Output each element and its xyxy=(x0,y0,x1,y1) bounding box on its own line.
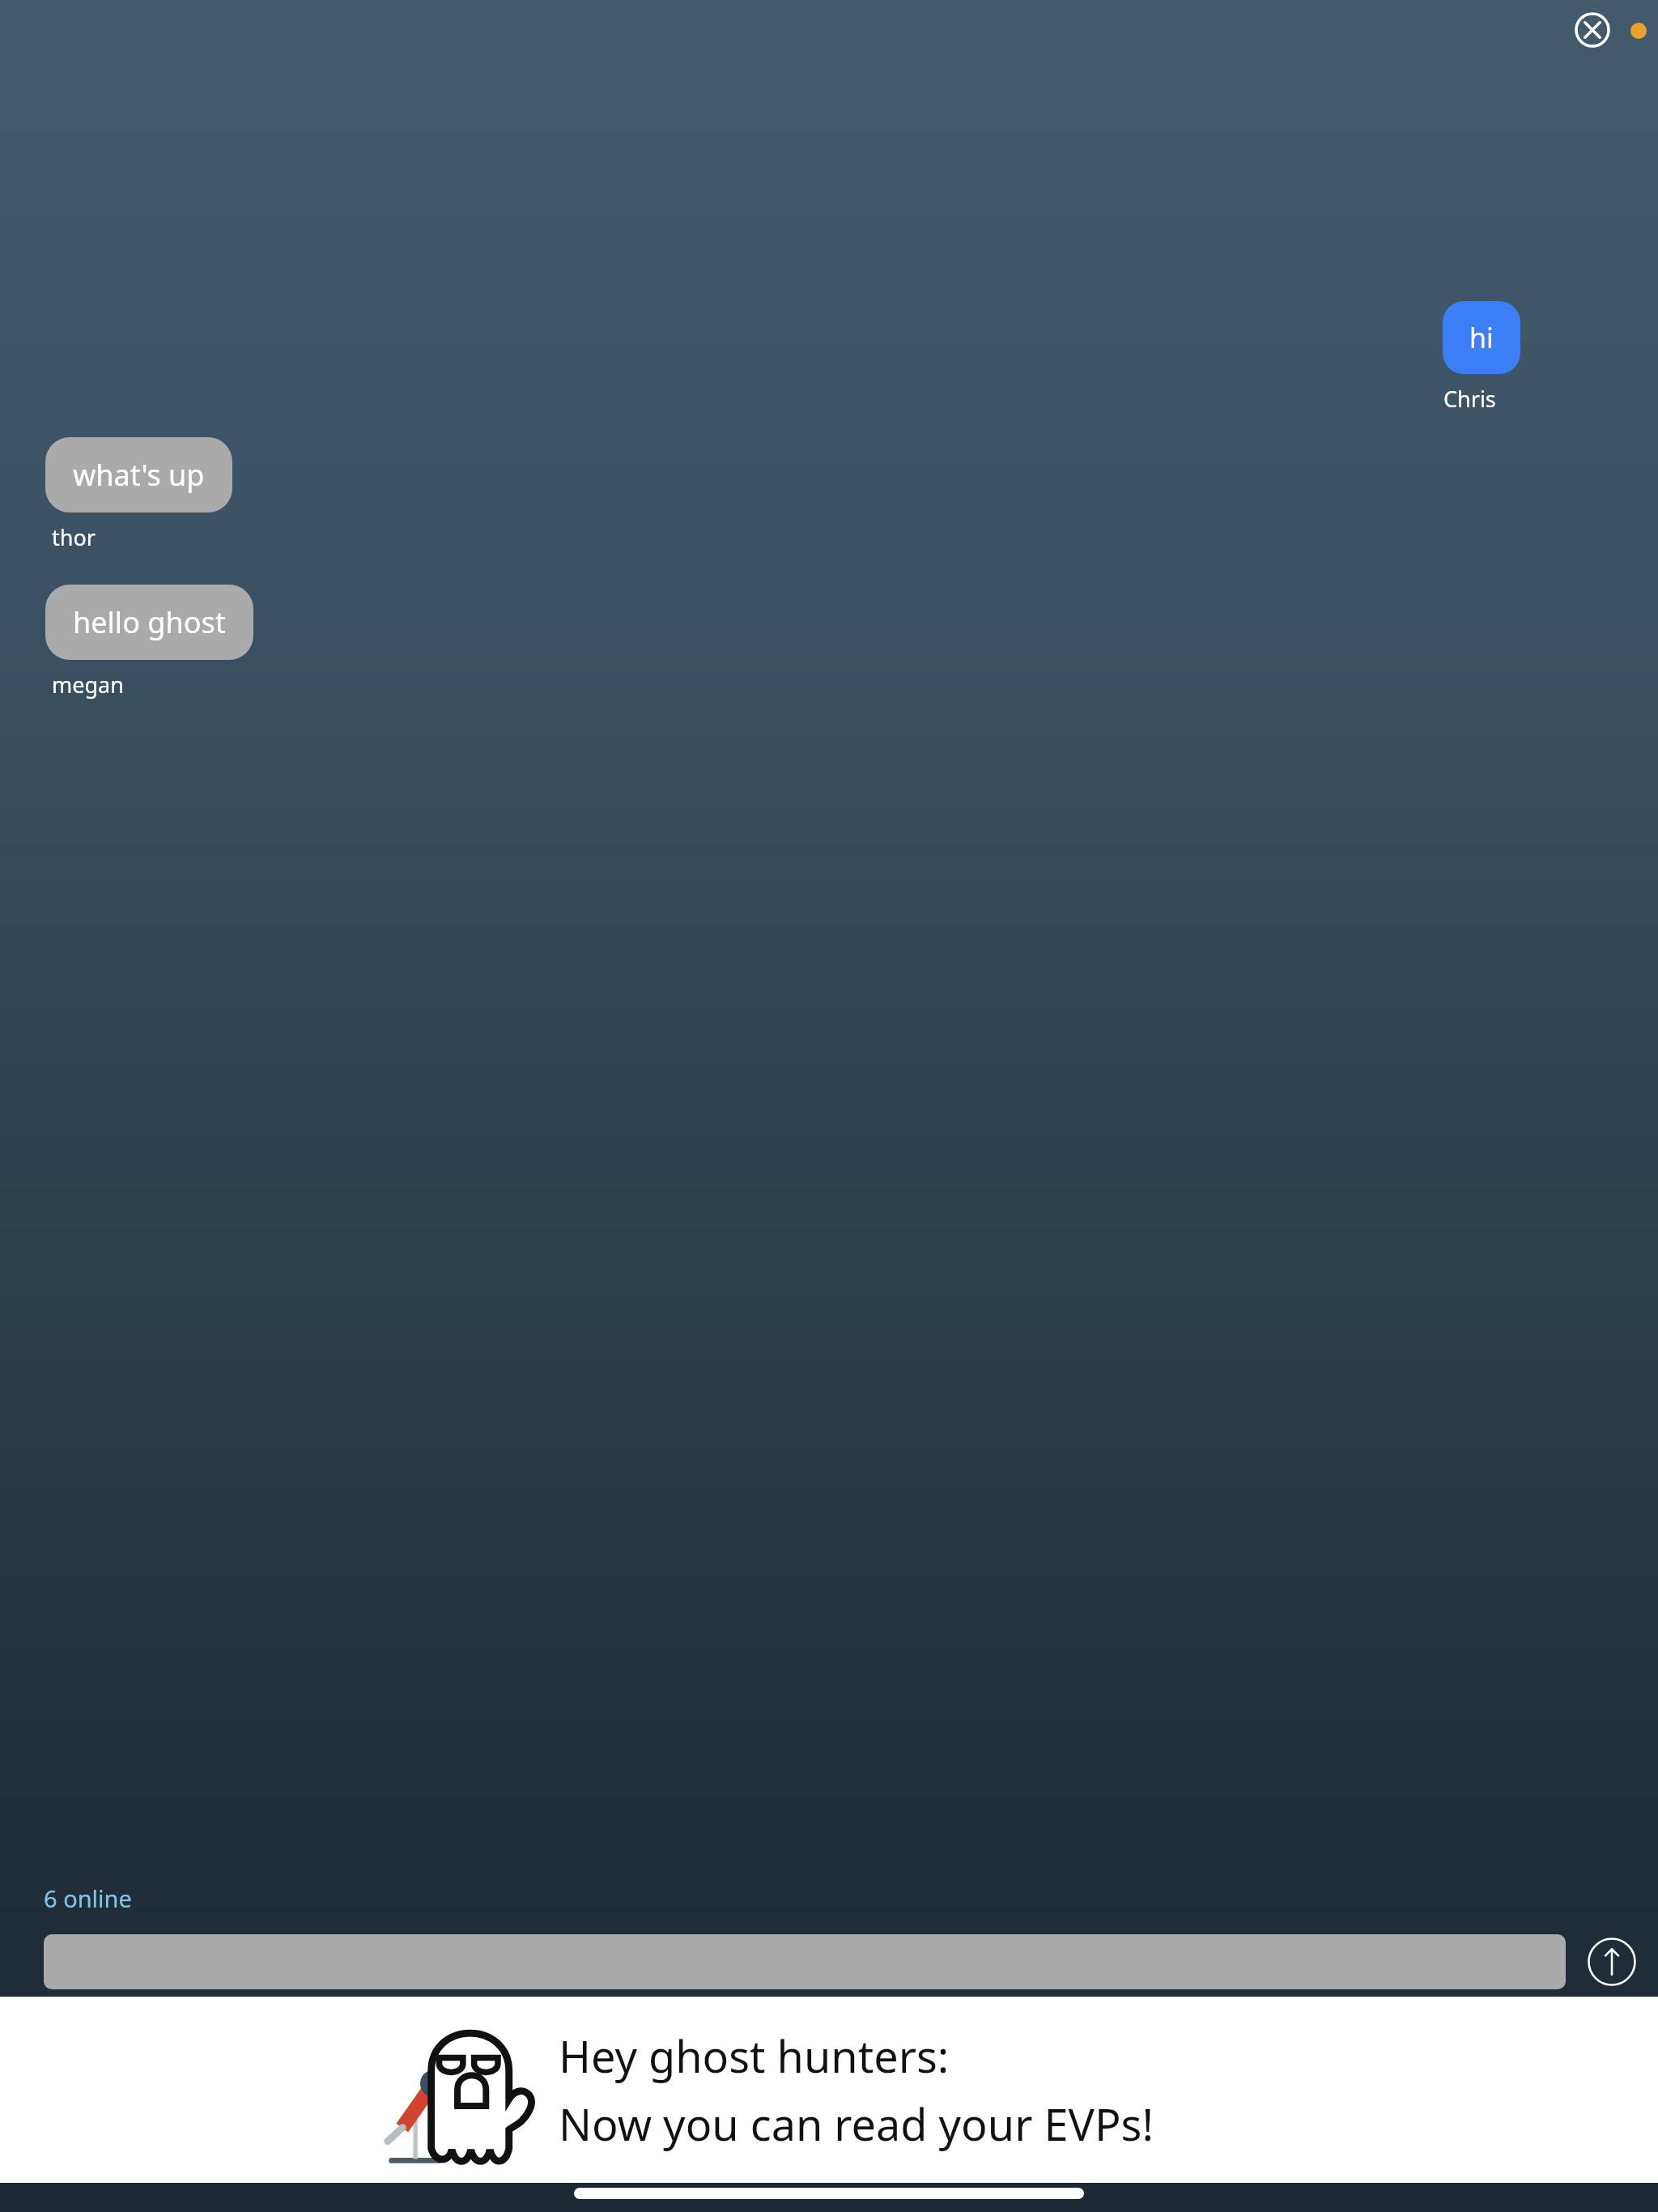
staticText: thor xyxy=(52,522,96,552)
staticText: hello ghost xyxy=(73,602,226,642)
staticText: 6 online xyxy=(44,1882,132,1914)
button[interactable]: hi xyxy=(1443,301,1520,374)
button[interactable] xyxy=(44,1934,1566,1989)
staticText: hi xyxy=(1469,319,1494,356)
staticText: Now you can read your EVPs! xyxy=(559,2094,1154,2154)
button[interactable]: hello ghost xyxy=(45,585,253,660)
button[interactable]: Close xyxy=(1562,0,1622,60)
button[interactable]: Send xyxy=(1577,1927,1647,1997)
button[interactable]: Hey ghost hunters: xyxy=(0,1997,1658,2183)
staticText: Chris xyxy=(1443,384,1496,414)
button[interactable]: what's up xyxy=(45,437,232,513)
staticText: Hey ghost hunters: xyxy=(559,2026,950,2086)
staticText: megan xyxy=(52,670,124,700)
staticText: what's up xyxy=(73,455,205,495)
